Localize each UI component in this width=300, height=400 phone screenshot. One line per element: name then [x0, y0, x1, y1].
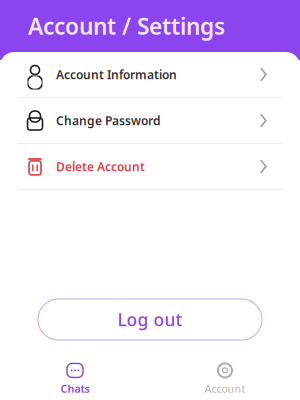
staticText: Chats — [60, 381, 89, 396]
button[interactable]: Account — [150, 362, 300, 396]
staticText: Account — [204, 381, 245, 396]
button[interactable]: Chats — [0, 362, 150, 396]
staticText: Account Information — [56, 66, 177, 82]
staticText: Delete Account — [56, 158, 145, 174]
button[interactable]: Change Password — [0, 98, 300, 143]
staticText: Account / Settings — [28, 11, 225, 41]
staticText: Change Password — [56, 112, 161, 128]
button[interactable]: Log out — [38, 299, 262, 340]
button[interactable]: Delete Account — [0, 144, 300, 189]
staticText: Log out — [117, 308, 182, 331]
button[interactable]: Account Information — [0, 52, 300, 97]
